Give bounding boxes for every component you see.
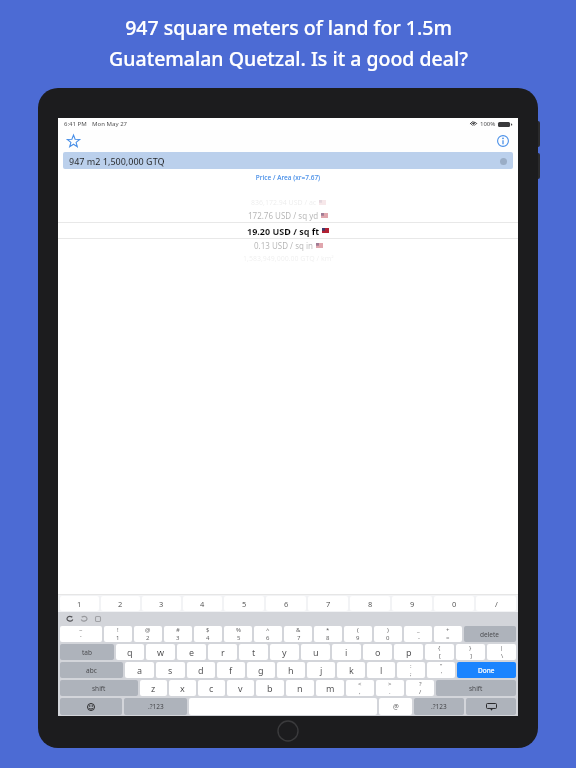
button[interactable]: l: [367, 662, 395, 678]
button[interactable]: 19.20 USD / sq ft: [58, 223, 518, 238]
button[interactable]: Redo: [77, 612, 91, 625]
staticText: Price / Area (xr=7.67): [58, 173, 518, 182]
button[interactable]: @: [379, 698, 412, 715]
button[interactable]: 3: [142, 596, 181, 611]
staticText: 836,172.94 USD / ac: [251, 198, 317, 208]
button[interactable]: tab: [60, 644, 114, 660]
button[interactable]: &: [284, 626, 312, 642]
button[interactable]: <: [346, 680, 374, 696]
button[interactable]: s: [156, 662, 185, 678]
button[interactable]: 5: [224, 596, 264, 611]
staticText: n: [297, 682, 303, 694]
button[interactable]: z: [140, 680, 167, 696]
button[interactable]: ^: [254, 626, 282, 642]
button[interactable]: q: [116, 644, 144, 660]
staticText: k: [349, 664, 354, 676]
staticText: 1,583,949,000.00 GTQ / km²: [243, 254, 334, 264]
button[interactable]: k: [337, 662, 365, 678]
button[interactable]: |: [487, 644, 516, 660]
button[interactable]: v: [227, 680, 254, 696]
button[interactable]: 7: [308, 596, 348, 611]
button[interactable]: !: [104, 626, 132, 642]
staticText: 172.76 USD / sq yd: [248, 210, 319, 221]
button[interactable]: .?123: [124, 698, 187, 715]
button[interactable]: u: [301, 644, 330, 660]
button[interactable]: r: [208, 644, 237, 660]
button[interactable]: Clear: [498, 156, 508, 166]
button[interactable]: 4: [183, 596, 222, 611]
button[interactable]: (: [344, 626, 372, 642]
button[interactable]: ?: [406, 680, 434, 696]
button[interactable]: d: [187, 662, 215, 678]
button[interactable]: Hide keyboard: [466, 698, 516, 715]
button[interactable]: j: [307, 662, 335, 678]
button[interactable]: abc: [60, 662, 123, 678]
staticText: z: [151, 682, 156, 694]
button[interactable]: Done: [457, 662, 516, 678]
button[interactable]: Favorite: [64, 132, 82, 150]
button[interactable]: _: [404, 626, 432, 642]
button[interactable]: 6: [266, 596, 306, 611]
staticText: 7: [326, 599, 331, 609]
button[interactable]: *: [314, 626, 342, 642]
button[interactable]: ): [374, 626, 402, 642]
button[interactable]: $: [194, 626, 222, 642]
button[interactable]: p: [394, 644, 423, 660]
staticText: &: [296, 626, 301, 634]
button[interactable]: 8: [350, 596, 390, 611]
button[interactable]: n: [286, 680, 314, 696]
button[interactable]: %: [224, 626, 252, 642]
button[interactable]: x: [169, 680, 196, 696]
button[interactable]: 2: [101, 596, 140, 611]
button[interactable]: a: [125, 662, 154, 678]
button[interactable]: shift: [436, 680, 516, 696]
button[interactable]: #: [164, 626, 192, 642]
button[interactable]: o: [363, 644, 392, 660]
button[interactable]: i: [332, 644, 361, 660]
button[interactable]: ~: [60, 626, 102, 642]
button[interactable]: /: [476, 596, 516, 611]
button[interactable]: shift: [60, 680, 138, 696]
button[interactable]: +: [434, 626, 462, 642]
button[interactable]: >: [376, 680, 404, 696]
button[interactable]: g: [247, 662, 275, 678]
button[interactable]: :: [397, 662, 425, 678]
button[interactable]: Paste: [91, 612, 105, 625]
staticText: q: [127, 646, 133, 658]
button[interactable]: 0: [434, 596, 474, 611]
staticText: _: [417, 626, 420, 634]
button[interactable]: w: [146, 644, 175, 660]
staticText: ,: [359, 688, 361, 696]
button[interactable]: f: [217, 662, 245, 678]
button[interactable]: Emoji: [60, 698, 122, 715]
button[interactable]: .?123: [414, 698, 464, 715]
staticText: +: [446, 626, 450, 634]
button[interactable]: t: [239, 644, 268, 660]
button[interactable]: @: [134, 626, 162, 642]
button[interactable]: ": [427, 662, 455, 678]
staticText: $: [206, 626, 210, 634]
staticText: l: [380, 664, 383, 676]
button[interactable]: 172.76 USD / sq yd: [58, 209, 518, 222]
button[interactable]: Info: [494, 132, 512, 150]
button[interactable]: {: [425, 644, 454, 660]
button[interactable]: 1: [60, 596, 99, 611]
button[interactable]: y: [270, 644, 299, 660]
button[interactable]: b: [256, 680, 284, 696]
button[interactable]: 9: [392, 596, 432, 611]
button[interactable]: Undo: [63, 612, 77, 625]
staticText: h: [288, 664, 294, 676]
button[interactable]: c: [198, 680, 225, 696]
button[interactable]: m: [316, 680, 344, 696]
button[interactable]: 0.13 USD / sq in: [58, 239, 518, 252]
button[interactable]: e: [177, 644, 206, 660]
button[interactable]: 947 m2 1,500,000 GTQ: [63, 152, 513, 169]
button[interactable]: delete: [464, 626, 516, 642]
staticText: w: [157, 646, 165, 658]
staticText: 6: [284, 599, 289, 609]
button[interactable]: }: [456, 644, 485, 660]
button[interactable]: h: [277, 662, 305, 678]
